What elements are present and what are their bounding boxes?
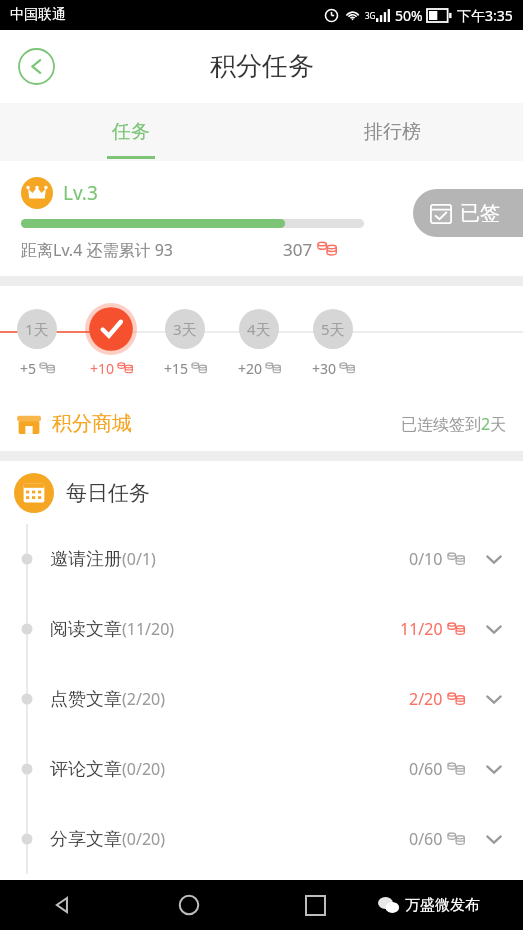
- button[interactable]: Home: [126, 880, 252, 930]
- staticText: 3天: [173, 319, 197, 339]
- staticText: 4天: [247, 319, 271, 339]
- staticText: 评论文章(0/20): [50, 758, 166, 781]
- button[interactable]: 1天: [11, 303, 63, 378]
- button[interactable]: 评论文章(0/20): [0, 734, 523, 804]
- staticText: 5天: [321, 319, 345, 339]
- staticText: 已连续签到2天: [401, 413, 507, 435]
- button[interactable]: Recents: [252, 880, 378, 930]
- button[interactable]: 邀请注册(0/1): [0, 524, 523, 594]
- button[interactable]: 点赞文章(2/20): [0, 664, 523, 734]
- staticText: 1天: [25, 319, 49, 339]
- button[interactable]: 4天: [233, 303, 285, 378]
- staticText: 3G: [365, 10, 376, 21]
- staticText: 0/60: [409, 828, 443, 850]
- staticText: +10: [90, 359, 115, 378]
- button[interactable]: 阅读文章(11/20): [0, 594, 523, 664]
- button[interactable]: 任务: [0, 103, 261, 161]
- staticText: 每日任务: [66, 480, 150, 506]
- staticText: 已签: [460, 201, 500, 226]
- staticText: 万盛微发布: [405, 896, 480, 915]
- staticText: 0/60: [409, 758, 443, 780]
- button[interactable]: 3天: [159, 303, 211, 378]
- staticText: 中国联通: [10, 6, 66, 24]
- staticText: +30: [312, 359, 337, 378]
- staticText: Lv.3: [63, 180, 98, 206]
- staticText: 2/20: [409, 688, 443, 710]
- staticText: 积分任务: [210, 50, 314, 83]
- staticText: 0/10: [409, 548, 443, 570]
- button[interactable]: 排行榜: [261, 103, 523, 161]
- staticText: 点赞文章(2/20): [50, 688, 166, 711]
- button[interactable]: +10: [85, 303, 137, 378]
- button[interactable]: Back: [14, 44, 59, 89]
- staticText: +5: [20, 359, 37, 378]
- staticText: 11/20: [400, 618, 443, 640]
- staticText: 积分商城: [52, 411, 132, 436]
- button[interactable]: 积分商城: [0, 396, 523, 451]
- staticText: +15: [164, 359, 189, 378]
- button[interactable]: 已签: [413, 189, 523, 237]
- staticText: 距离Lv.4 还需累计 93: [21, 239, 173, 261]
- staticText: +20: [238, 359, 263, 378]
- staticText: 分享文章(0/20): [50, 828, 166, 851]
- button[interactable]: Back: [0, 880, 126, 930]
- staticText: 阅读文章(11/20): [50, 618, 175, 641]
- staticText: 50%: [395, 6, 423, 25]
- staticText: 排行榜: [364, 120, 421, 144]
- staticText: 307: [283, 238, 313, 261]
- button[interactable]: 分享文章(0/20): [0, 804, 523, 874]
- staticText: 邀请注册(0/1): [50, 548, 156, 571]
- staticText: 下午3:35: [457, 6, 513, 25]
- button[interactable]: 5天: [307, 303, 359, 378]
- staticText: 任务: [112, 120, 150, 144]
